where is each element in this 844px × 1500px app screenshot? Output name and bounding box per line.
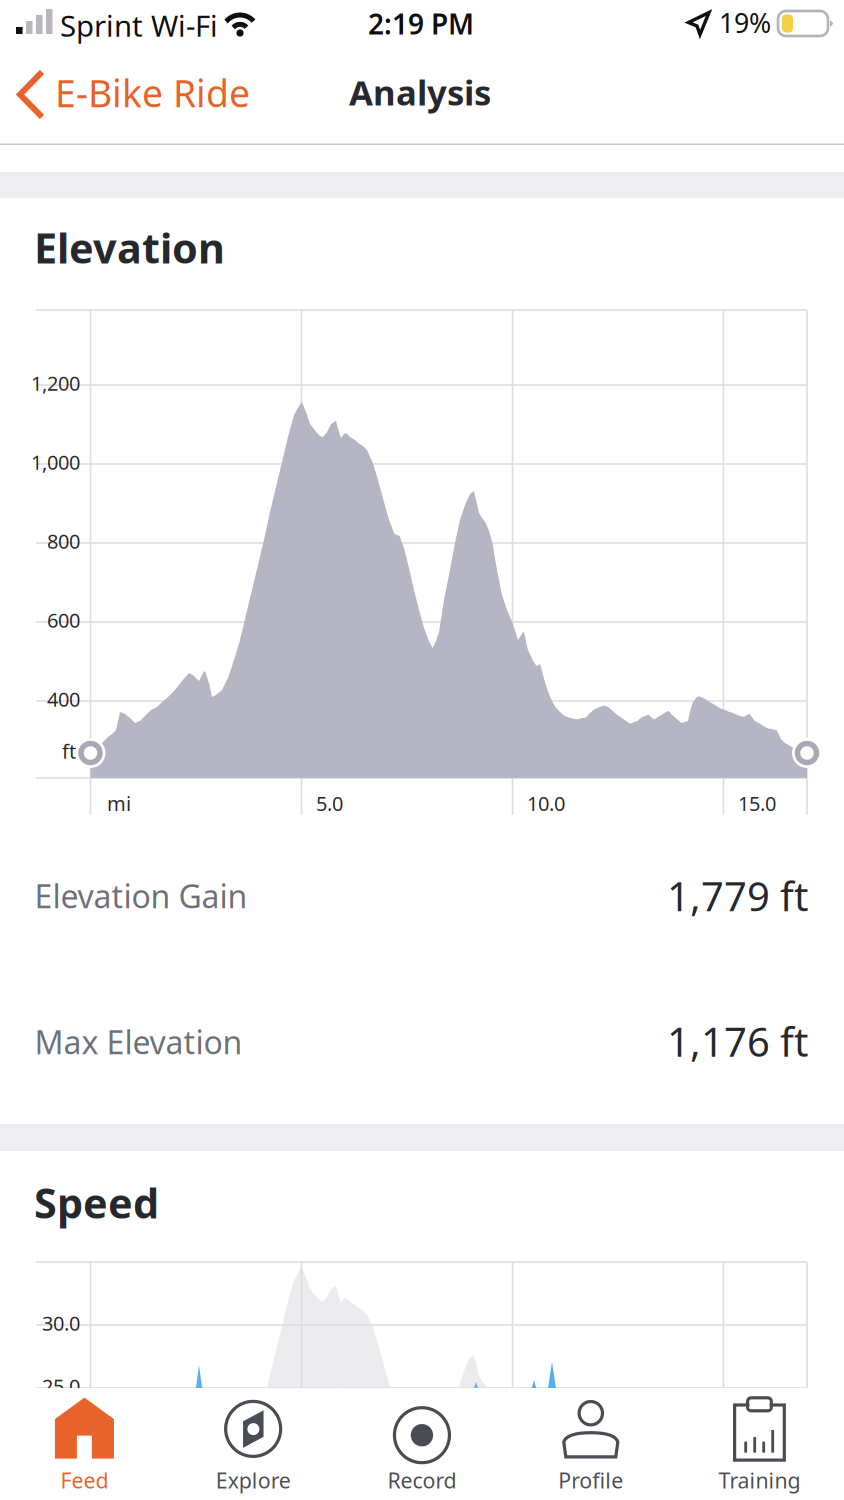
staticText: 1,200 bbox=[31, 370, 80, 396]
staticText: Max Elevation bbox=[34, 1020, 242, 1063]
staticText: 15.0 bbox=[738, 790, 776, 817]
staticText: 1,176 ft bbox=[667, 1015, 808, 1068]
staticText: 5.0 bbox=[316, 790, 343, 817]
button[interactable]: E-Bike Ride bbox=[0, 56, 250, 145]
button[interactable]: Elevation Gain bbox=[0, 820, 844, 968]
staticText: Elevation Gain bbox=[34, 875, 247, 917]
staticText: Training bbox=[719, 1466, 801, 1494]
staticText: 19% bbox=[719, 5, 771, 40]
staticText: Analysis bbox=[349, 69, 491, 115]
button[interactable]: Profile bbox=[506, 1388, 675, 1500]
button[interactable]: Feed bbox=[0, 1388, 169, 1500]
staticText: 800 bbox=[47, 528, 80, 554]
staticText: 1,000 bbox=[31, 449, 80, 475]
button[interactable]: Training bbox=[675, 1388, 844, 1500]
button[interactable]: Record bbox=[338, 1388, 506, 1500]
staticText: Profile bbox=[558, 1466, 623, 1494]
staticText: Sprint Wi-Fi bbox=[60, 6, 218, 45]
staticText: 400 bbox=[47, 686, 80, 712]
button[interactable]: Max Elevation bbox=[0, 968, 844, 1124]
staticText: 30.0 bbox=[42, 1310, 80, 1336]
staticText: 1,779 ft bbox=[667, 869, 808, 922]
staticText: 600 bbox=[47, 607, 80, 633]
staticText: mi bbox=[107, 790, 131, 817]
staticText: Explore bbox=[216, 1466, 291, 1494]
staticText: E-Bike Ride bbox=[55, 68, 250, 118]
staticText: Elevation bbox=[34, 220, 225, 275]
staticText: 2:19 PM bbox=[368, 5, 474, 42]
staticText: ft bbox=[62, 738, 76, 764]
staticText: Feed bbox=[60, 1466, 108, 1494]
staticText: 25.0 bbox=[42, 1373, 80, 1399]
button[interactable]: Explore bbox=[169, 1388, 338, 1500]
staticText: Record bbox=[387, 1466, 456, 1494]
staticText: 10.0 bbox=[527, 790, 565, 817]
staticText: Speed bbox=[34, 1175, 159, 1230]
